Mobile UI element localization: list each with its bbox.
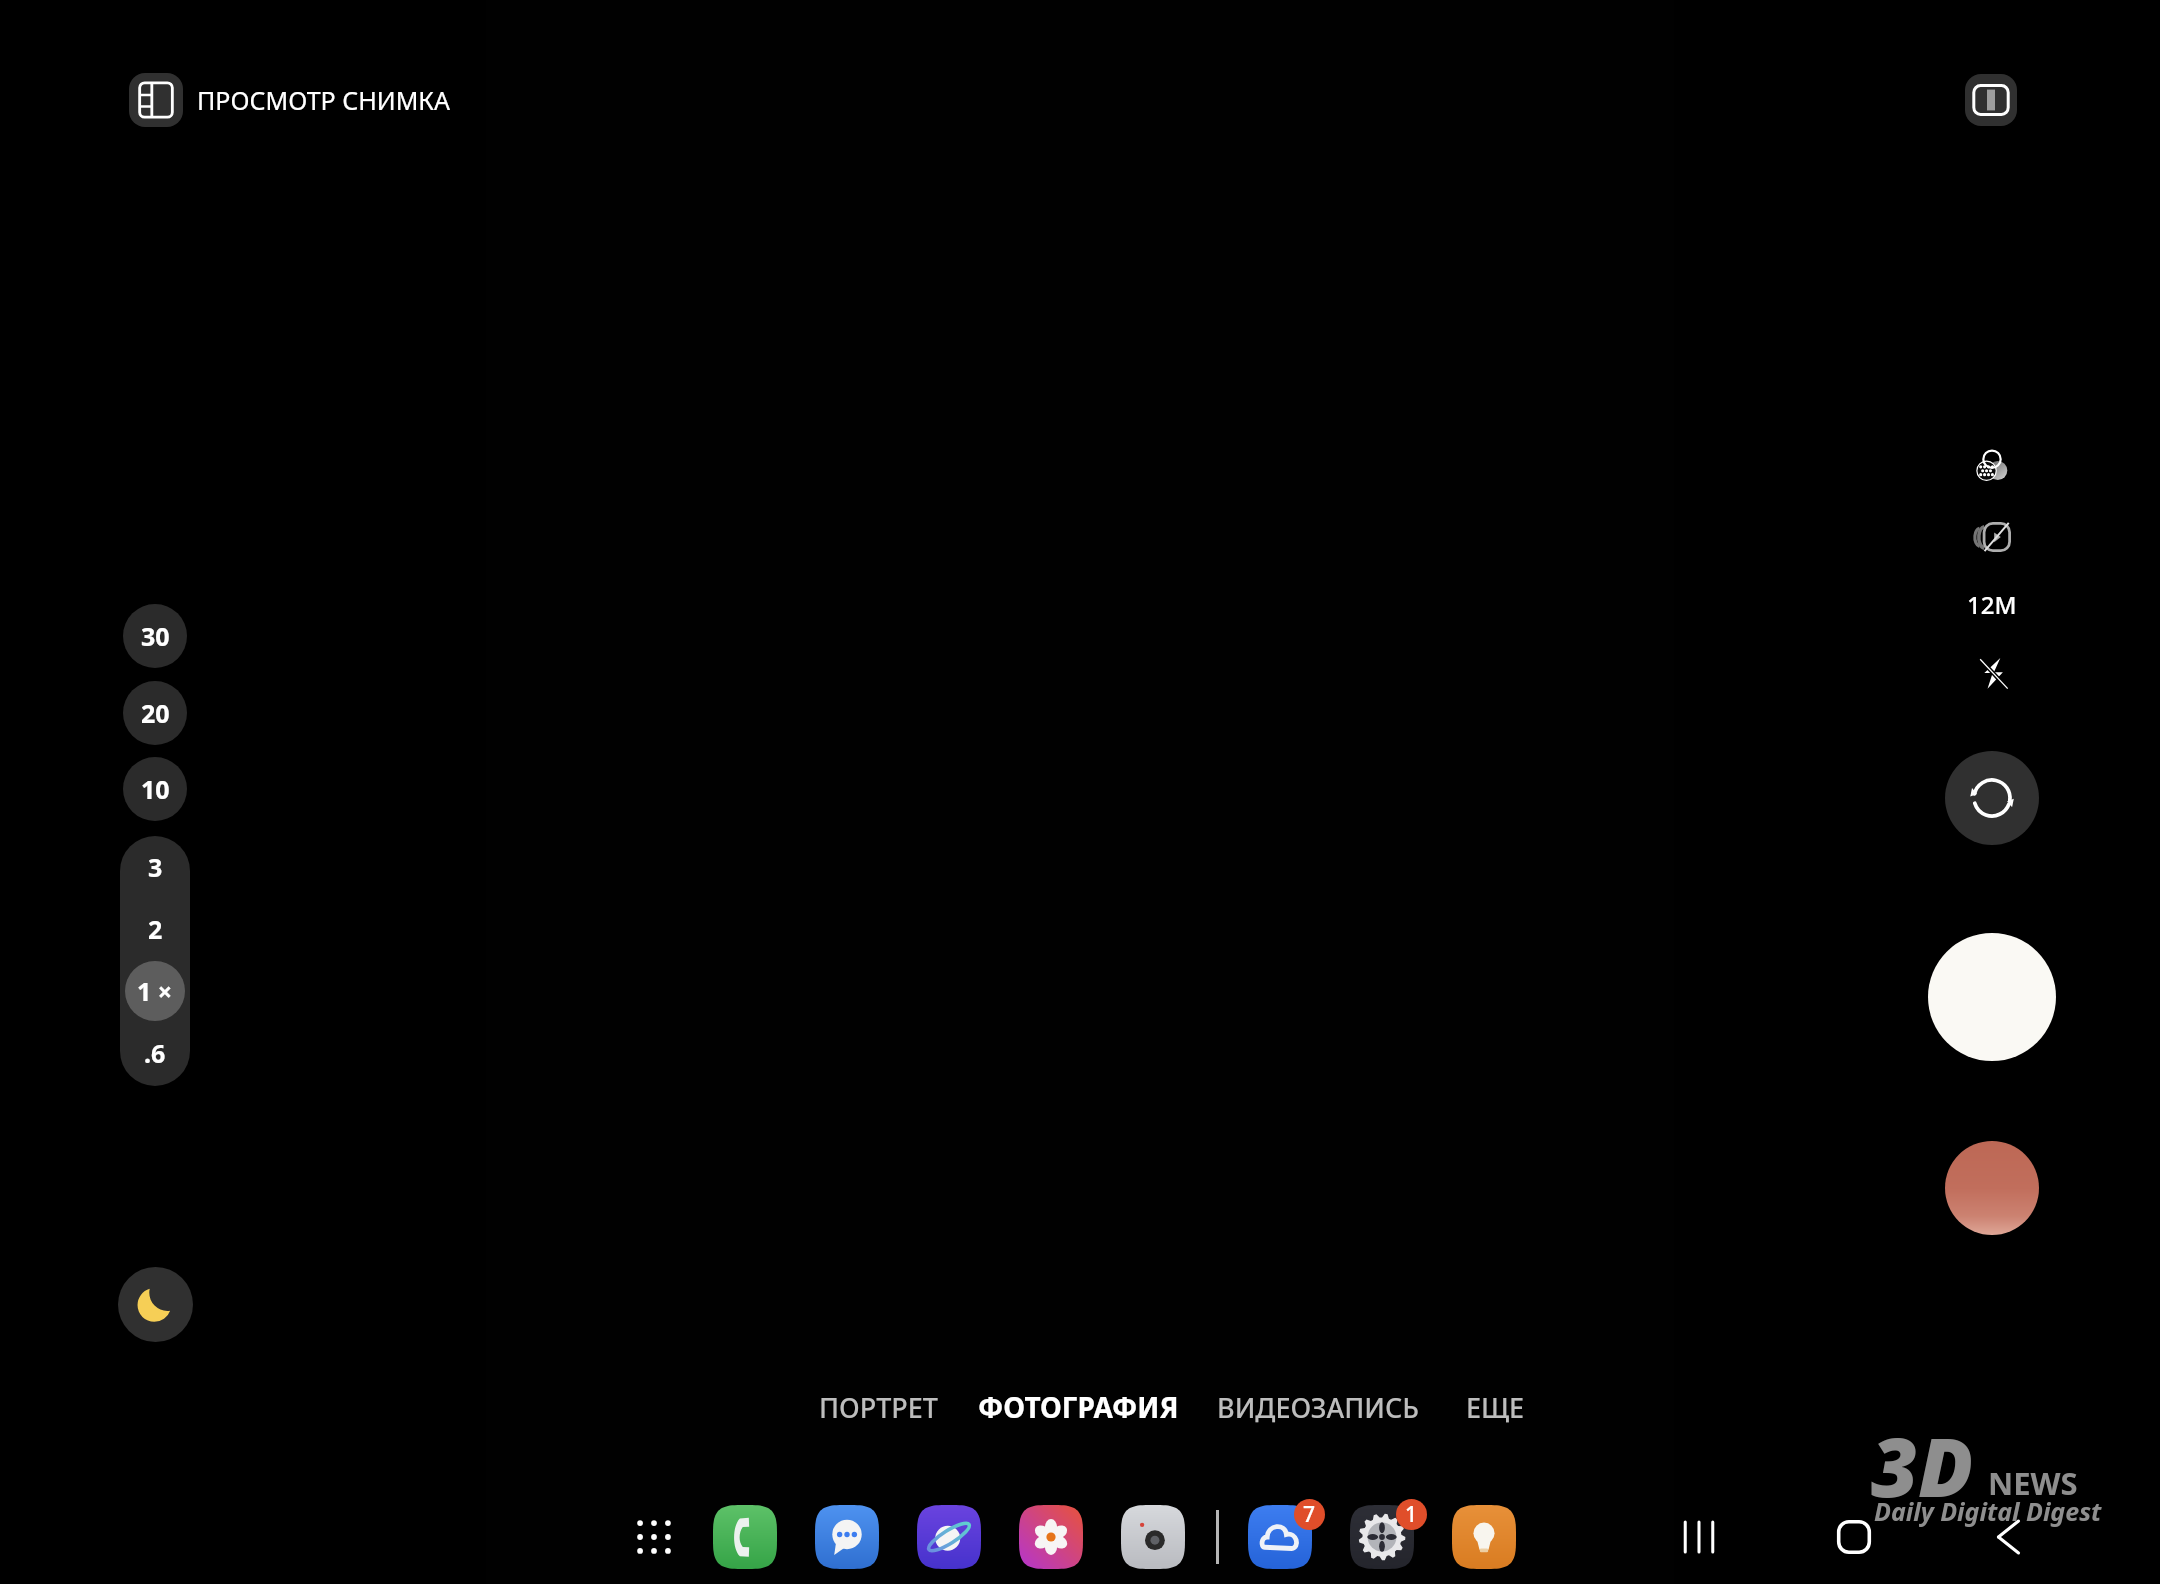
staticText: 1 ×: [137, 974, 173, 1008]
staticText: ПОРТРЕТ: [819, 1389, 939, 1426]
staticText: 2: [148, 912, 163, 946]
button[interactable]: Back: [1954, 1482, 2064, 1584]
button[interactable]: Filters: [1952, 426, 2032, 506]
button[interactable]: Flash off: [1952, 633, 2032, 713]
staticText: ПРОСМОТР СНИМКА: [197, 83, 450, 117]
button[interactable]: App: [815, 1505, 879, 1569]
button[interactable]: Gallery: [1945, 1141, 2039, 1235]
button[interactable]: Shutter: [1928, 933, 2056, 1061]
button[interactable]: App: [1452, 1505, 1516, 1569]
button[interactable]: ЕЩЕ: [1365, 1380, 1625, 1434]
button[interactable]: ФОТОГРАФИЯ: [948, 1380, 1208, 1434]
staticText: 1: [1405, 1500, 1418, 1529]
button[interactable]: Motion photo off: [1952, 497, 2032, 577]
staticText: ЕЩЕ: [1466, 1389, 1525, 1426]
button[interactable]: Layout: [1965, 74, 2017, 126]
button[interactable]: 30: [123, 604, 187, 668]
button[interactable]: 10: [123, 757, 187, 821]
button[interactable]: 1 ×: [120, 960, 190, 1022]
button[interactable]: App: [1019, 1505, 1083, 1569]
button[interactable]: App: [713, 1505, 777, 1569]
button[interactable]: 12M: [1937, 577, 2047, 631]
staticText: Daily Digital Digest: [1874, 1494, 2102, 1528]
staticText: 20: [141, 696, 170, 730]
button[interactable]: ПОРТРЕТ: [749, 1380, 1009, 1434]
button[interactable]: App: [917, 1505, 981, 1569]
button[interactable]: ПРОСМОТР СНИМКА: [129, 73, 450, 127]
staticText: .6: [144, 1036, 166, 1070]
button[interactable]: .6: [120, 1022, 190, 1084]
button[interactable]: Night mode: [118, 1267, 193, 1342]
button[interactable]: Switch camera: [1945, 751, 2039, 845]
staticText: 3: [148, 850, 163, 884]
staticText: 10: [141, 772, 170, 806]
button[interactable]: Recents: [1644, 1482, 1754, 1584]
staticText: ФОТОГРАФИЯ: [978, 1388, 1179, 1426]
button[interactable]: ВИДЕОЗАПИСЬ: [1188, 1380, 1448, 1434]
button[interactable]: 3: [120, 836, 190, 898]
staticText: 7: [1303, 1500, 1316, 1529]
button[interactable]: 20: [123, 681, 187, 745]
button[interactable]: Apps: [612, 1495, 696, 1579]
button[interactable]: Home: [1799, 1482, 1909, 1584]
staticText: 3D: [1871, 1410, 1974, 1520]
button[interactable]: App: [1248, 1505, 1312, 1569]
button[interactable]: 2: [120, 898, 190, 960]
staticText: 30: [141, 619, 170, 653]
button[interactable]: App: [1121, 1505, 1185, 1569]
staticText: NEWS: [1988, 1462, 2078, 1504]
staticText: ВИДЕОЗАПИСЬ: [1217, 1389, 1419, 1426]
staticText: 12M: [1967, 588, 2017, 621]
button[interactable]: App: [1350, 1505, 1414, 1569]
